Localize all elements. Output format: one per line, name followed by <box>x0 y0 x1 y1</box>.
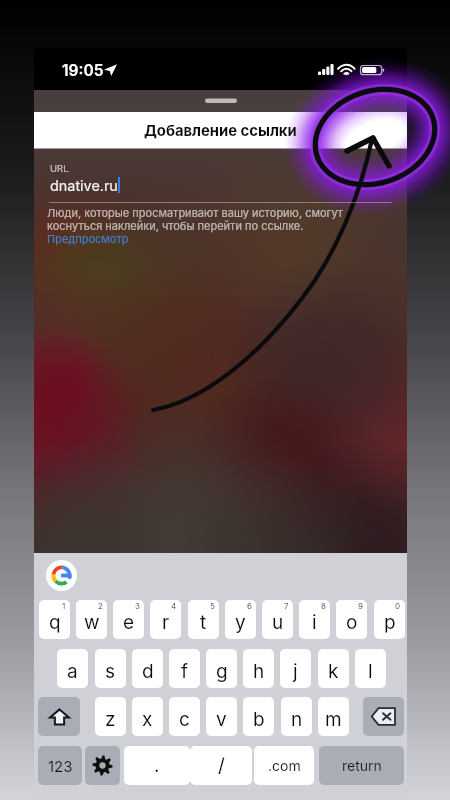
button[interactable]: g <box>206 649 237 688</box>
button[interactable]: 3 <box>113 600 144 639</box>
staticText: u <box>272 611 284 634</box>
button[interactable]: 1 <box>39 600 70 639</box>
button[interactable]: Предпросмотр <box>47 232 129 245</box>
staticText: e <box>123 611 135 634</box>
staticText: Люди, которые просматривают вашу историю… <box>47 206 343 219</box>
staticText: c <box>179 708 190 731</box>
staticText: 8 <box>321 601 326 611</box>
button[interactable]: 0 <box>374 600 405 639</box>
staticText: o <box>346 611 358 634</box>
button[interactable]: 8 <box>299 600 330 639</box>
button[interactable]: return <box>319 746 404 785</box>
staticText: p <box>384 611 396 634</box>
button[interactable]: v <box>206 697 237 736</box>
staticText: q <box>49 611 61 634</box>
staticText: k <box>328 660 339 683</box>
staticText: t <box>200 611 207 634</box>
button[interactable]: 6 <box>225 600 256 639</box>
staticText: 6 <box>247 601 252 611</box>
button[interactable]: c <box>169 697 200 736</box>
button[interactable]: b <box>243 697 274 736</box>
staticText: / <box>218 754 225 777</box>
staticText: Добавление ссылки <box>144 122 297 140</box>
staticText: x <box>142 708 153 731</box>
button[interactable]: a <box>57 649 88 688</box>
staticText: 0 <box>395 601 401 611</box>
staticText: URL <box>50 163 69 174</box>
staticText: Предпросмотр <box>47 232 129 245</box>
button[interactable]: Добавление ссылки <box>34 112 407 149</box>
staticText: r <box>162 611 170 634</box>
staticText: s <box>105 660 116 683</box>
staticText: 1 <box>62 601 66 611</box>
staticText: f <box>181 660 189 683</box>
staticText: j <box>293 660 298 683</box>
staticText: a <box>67 660 78 683</box>
button[interactable]: m <box>318 697 349 736</box>
staticText: коснуться наклейки, чтобы перейти по ссы… <box>47 219 304 232</box>
button[interactable]: 7 <box>262 600 293 639</box>
button[interactable]: x <box>132 697 163 736</box>
staticText: 9 <box>358 601 363 611</box>
staticText: d <box>142 660 154 683</box>
staticText: v <box>216 708 227 731</box>
staticText: 4 <box>171 601 177 611</box>
staticText: b <box>253 708 265 731</box>
staticText: w <box>84 611 100 634</box>
button[interactable]: .com <box>254 746 314 785</box>
button[interactable]: Google <box>46 560 77 591</box>
staticText: 2 <box>98 601 103 611</box>
staticText: l <box>368 660 373 683</box>
button[interactable]: j <box>280 649 311 688</box>
staticText: 7 <box>284 601 289 611</box>
staticText: 3 <box>135 601 140 611</box>
staticText: . <box>154 754 160 777</box>
button[interactable]: / <box>190 746 252 785</box>
button[interactable]: 5 <box>188 600 219 639</box>
staticText: g <box>216 660 228 683</box>
staticText: m <box>325 708 342 731</box>
button[interactable]: 9 <box>336 600 367 639</box>
button[interactable]: 123 <box>38 746 82 785</box>
button[interactable]: . <box>124 746 190 785</box>
staticText: 19:05 <box>62 61 104 79</box>
staticText: i <box>312 611 317 634</box>
staticText: .com <box>268 757 301 774</box>
button[interactable]: k <box>318 649 349 688</box>
staticText: n <box>291 708 303 731</box>
staticText: dnative.ru <box>50 177 118 194</box>
staticText: 123 <box>48 757 73 775</box>
button[interactable]: 2 <box>76 600 107 639</box>
staticText: return <box>342 757 382 774</box>
staticText: z <box>105 708 116 731</box>
staticText: y <box>235 611 246 634</box>
button[interactable]: l <box>355 649 386 688</box>
button[interactable]: z <box>95 697 126 736</box>
button[interactable]: d <box>132 649 163 688</box>
button[interactable]: Backspace <box>363 697 404 736</box>
staticText: 5 <box>210 601 215 611</box>
staticText: h <box>253 660 265 683</box>
button[interactable]: Keyboard settings <box>85 746 120 785</box>
button[interactable]: n <box>281 697 312 736</box>
button[interactable]: 4 <box>150 600 181 639</box>
button[interactable]: f <box>169 649 200 688</box>
button[interactable]: s <box>95 649 126 688</box>
button[interactable]: Shift <box>38 697 80 736</box>
button[interactable]: h <box>243 649 274 688</box>
